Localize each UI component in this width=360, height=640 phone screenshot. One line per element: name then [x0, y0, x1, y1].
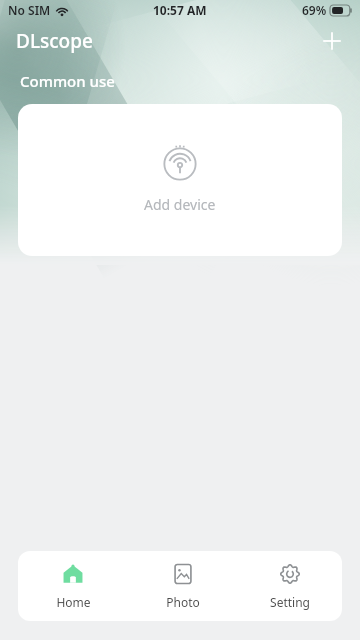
button[interactable]: Home [18, 555, 128, 618]
staticText: DLscope [16, 28, 93, 54]
staticText: Home [56, 594, 91, 610]
staticText: Photo [166, 594, 200, 610]
staticText: Add device [144, 195, 216, 214]
staticText: No SIM [8, 2, 51, 18]
staticText: Common use [20, 71, 115, 91]
button[interactable]: Add device [18, 104, 342, 256]
button[interactable]: Photo [128, 555, 238, 618]
staticText: 10:57 AM [153, 2, 207, 18]
button[interactable]: Add [314, 23, 350, 59]
staticText: Setting [270, 594, 310, 610]
button[interactable]: Setting [238, 555, 342, 618]
staticText: 69% [302, 2, 327, 18]
